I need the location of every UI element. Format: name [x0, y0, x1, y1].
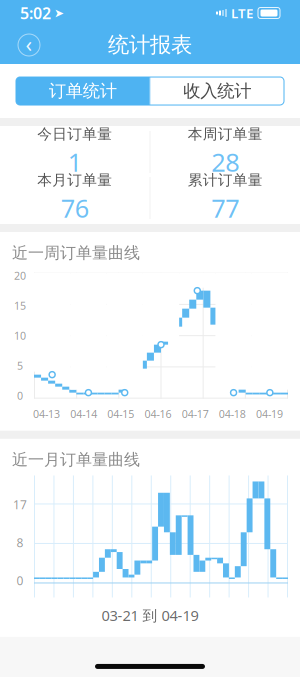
- staticText: 本月订单量: [37, 171, 112, 189]
- staticText: 04-13: [33, 407, 60, 421]
- button[interactable]: 收入统计: [150, 77, 284, 105]
- staticText: 77: [211, 191, 239, 225]
- staticText: 8: [16, 534, 23, 550]
- staticText: 76: [61, 191, 89, 225]
- staticText: 03-21 到 04-19: [101, 605, 198, 625]
- staticText: 17: [13, 496, 27, 512]
- staticText: 统计报表: [108, 32, 192, 58]
- staticText: 04-17: [182, 407, 209, 421]
- button[interactable]: 订单统计: [16, 77, 149, 105]
- staticText: 5: [17, 359, 23, 373]
- staticText: 04-18: [219, 407, 246, 421]
- staticText: 5:02: [20, 2, 51, 24]
- staticText: 累计订单量: [188, 171, 263, 189]
- staticText: 订单统计: [49, 80, 117, 102]
- staticText: 本周订单量: [188, 125, 263, 143]
- staticText: 04-15: [107, 407, 134, 421]
- staticText: 20: [14, 269, 26, 283]
- staticText: 收入统计: [183, 80, 251, 102]
- staticText: 28: [211, 145, 239, 179]
- staticText: 1: [68, 145, 82, 179]
- staticText: 04-16: [144, 407, 171, 421]
- staticText: 04-19: [256, 407, 283, 421]
- staticText: LTE: [231, 4, 253, 22]
- staticText: 近一月订单量曲线: [12, 450, 140, 469]
- staticText: 15: [14, 299, 26, 313]
- staticText: 今日订单量: [37, 125, 112, 143]
- staticText: ➤: [54, 6, 64, 20]
- staticText: 04-14: [70, 407, 97, 421]
- staticText: 0: [16, 572, 23, 588]
- staticText: 0: [17, 389, 23, 403]
- staticText: 近一周订单量曲线: [12, 243, 140, 263]
- staticText: ‹: [25, 30, 32, 58]
- button[interactable]: Back: [6, 26, 52, 64]
- staticText: 10: [14, 329, 26, 343]
